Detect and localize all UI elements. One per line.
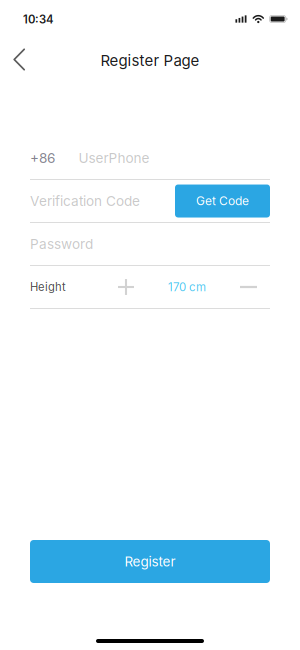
staticText: 10:34 — [23, 12, 54, 26]
button[interactable]: Back — [0, 38, 45, 85]
staticText: UserPhone — [78, 150, 149, 166]
staticText: Password — [30, 236, 93, 252]
button[interactable]: Increase height — [118, 266, 134, 308]
staticText: Register — [124, 553, 175, 570]
staticText: +86 — [30, 150, 55, 166]
staticText: Get Code — [196, 194, 249, 208]
staticText: Height — [30, 280, 66, 294]
staticText: Register Page — [100, 51, 199, 69]
button[interactable]: Decrease height — [240, 266, 257, 308]
staticText: 170 cm — [168, 280, 206, 294]
button[interactable]: Register — [30, 540, 270, 583]
button[interactable]: Get Code — [175, 184, 270, 217]
staticText: Verification Code — [30, 193, 140, 209]
